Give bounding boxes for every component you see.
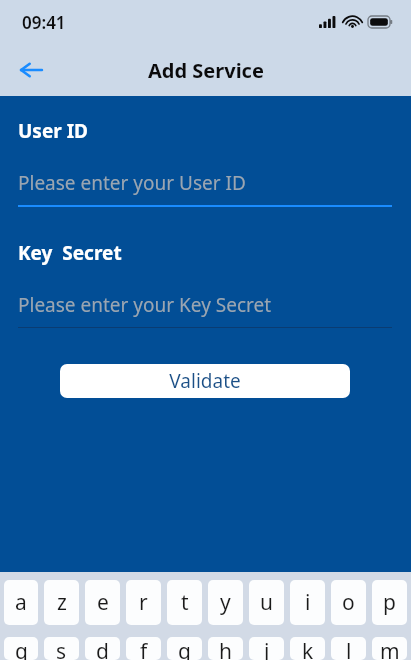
staticText: r — [139, 588, 148, 617]
button[interactable]: r — [126, 580, 161, 625]
staticText: d — [96, 637, 109, 660]
staticText: Key Secret — [18, 240, 122, 266]
staticText: l — [346, 637, 352, 660]
staticText: e — [97, 588, 109, 617]
staticText: Validate — [169, 368, 241, 394]
staticText: Add Service — [148, 57, 264, 84]
button[interactable]: d — [85, 637, 120, 660]
button[interactable]: e — [85, 580, 120, 625]
button[interactable]: i — [290, 580, 325, 625]
staticText: f — [140, 637, 148, 660]
staticText: k — [302, 637, 314, 660]
staticText: m — [380, 637, 400, 660]
button[interactable]: l — [331, 637, 366, 660]
button[interactable]: u — [249, 580, 284, 625]
staticText: p — [383, 588, 396, 617]
staticText: q — [15, 637, 28, 660]
button[interactable]: f — [126, 637, 161, 660]
button[interactable]: g — [167, 637, 202, 660]
staticText: 09:41 — [22, 11, 66, 34]
staticText: t — [181, 588, 189, 617]
staticText: h — [219, 637, 232, 660]
staticText: u — [260, 588, 273, 617]
button[interactable]: o — [331, 580, 366, 625]
staticText: a — [15, 588, 27, 617]
button[interactable]: Back — [14, 53, 48, 87]
button[interactable]: p — [372, 580, 407, 625]
button[interactable]: s — [44, 637, 79, 660]
staticText: User ID — [18, 118, 88, 144]
staticText: s — [56, 637, 67, 660]
button[interactable]: Please enter your User ID — [0, 170, 411, 207]
staticText: Please enter your User ID — [18, 170, 246, 196]
staticText: o — [342, 588, 355, 617]
button[interactable]: m — [372, 637, 407, 660]
button[interactable]: y — [208, 580, 243, 625]
button[interactable]: z — [44, 580, 79, 625]
button[interactable]: q — [4, 637, 38, 660]
staticText: g — [178, 637, 191, 660]
button[interactable]: j — [249, 637, 284, 660]
button[interactable]: a — [4, 580, 38, 625]
button[interactable]: Please enter your Key Secret — [0, 292, 411, 328]
staticText: j — [264, 637, 270, 660]
button[interactable]: Validate — [60, 364, 350, 398]
button[interactable]: k — [290, 637, 325, 660]
staticText: z — [57, 588, 67, 617]
staticText: Please enter your Key Secret — [18, 292, 272, 318]
staticText: i — [305, 588, 311, 617]
staticText: y — [220, 588, 231, 617]
button[interactable]: h — [208, 637, 243, 660]
button[interactable]: t — [167, 580, 202, 625]
